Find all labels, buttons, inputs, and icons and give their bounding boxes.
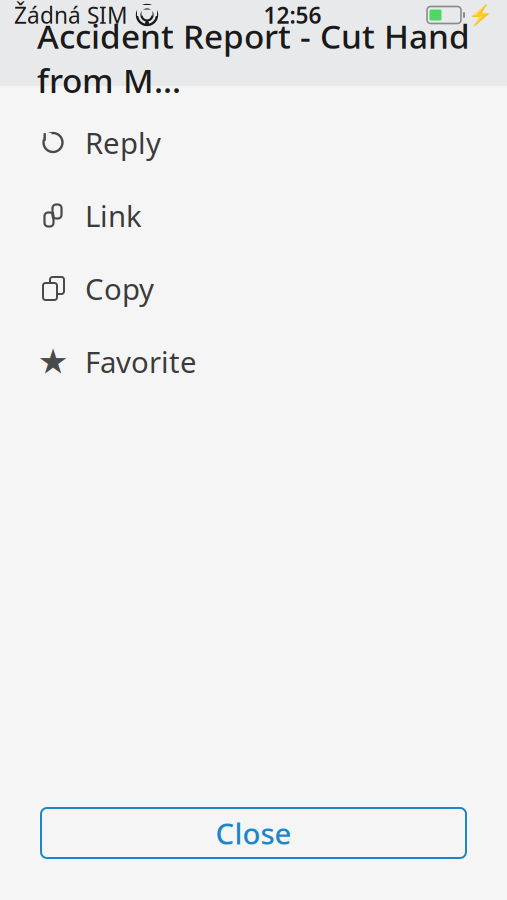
staticText: ⚡ — [468, 4, 493, 26]
button[interactable]: Reply — [0, 106, 507, 179]
staticText: Link — [85, 196, 142, 235]
staticText: 12:56 — [263, 0, 321, 30]
button[interactable]: Close — [41, 808, 466, 858]
staticText: Copy — [85, 269, 154, 308]
staticText: Žádná SIM — [14, 0, 128, 30]
button[interactable]: Copy — [0, 252, 507, 325]
staticText: Accident Report - Cut Hand from M... — [37, 14, 470, 102]
staticText: Close — [215, 813, 291, 852]
staticText: Favorite — [85, 342, 197, 381]
staticText: ★ — [37, 342, 68, 381]
staticText: Reply — [85, 123, 161, 162]
button[interactable]: ★ — [0, 325, 507, 398]
button[interactable]: Link — [0, 179, 507, 252]
